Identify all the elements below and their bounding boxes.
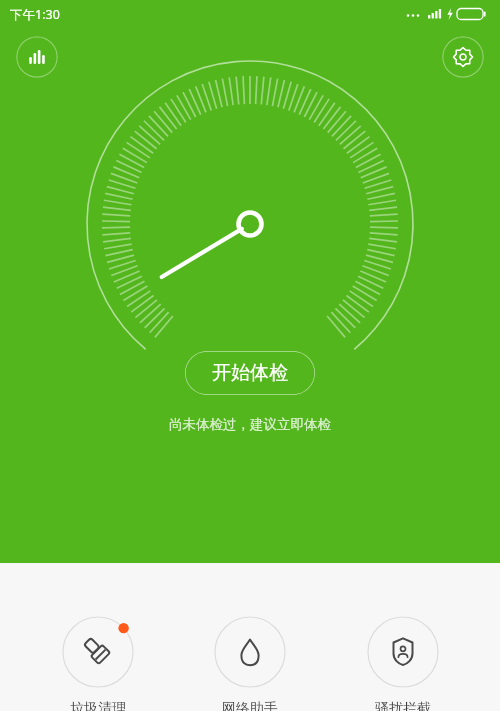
staticText: 垃圾清理	[70, 700, 126, 711]
button[interactable]: 骚扰拦截	[348, 616, 458, 711]
button[interactable]: 网络助手	[195, 616, 305, 711]
button[interactable]: Settings	[442, 36, 484, 78]
staticText: 尚未体检过，建议立即体检	[169, 416, 331, 433]
button[interactable]: Statistics	[16, 36, 58, 78]
button[interactable]: 开始体检	[185, 351, 315, 395]
staticText: 开始体检	[212, 361, 288, 385]
staticText: 下午1:30	[10, 6, 60, 23]
staticText: 骚扰拦截	[375, 700, 431, 711]
staticText: 网络助手	[222, 700, 278, 711]
button[interactable]: 垃圾清理	[43, 616, 153, 711]
